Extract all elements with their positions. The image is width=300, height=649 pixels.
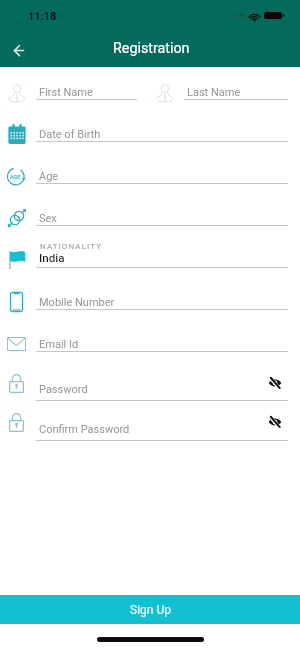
staticText: Confirm Password [39, 423, 130, 436]
staticText: Last Name [187, 86, 241, 99]
button[interactable]: Back [7, 38, 31, 62]
staticText: Sign Up [130, 603, 171, 617]
staticText: Age [39, 170, 59, 183]
staticText: India [39, 251, 65, 265]
staticText: 11:18 [28, 10, 57, 23]
staticText: Mobile Number [39, 296, 115, 309]
staticText: Sex [39, 212, 57, 225]
button[interactable]: Toggle password visibility [268, 416, 282, 428]
staticText: First Name [39, 86, 93, 99]
staticText: AGE [10, 174, 21, 180]
button[interactable]: Sign Up [0, 595, 300, 624]
staticText: Date of Birth [39, 128, 101, 141]
staticText: Email Id [39, 338, 79, 351]
button[interactable]: Toggle password visibility [268, 377, 282, 389]
staticText: Password [39, 383, 88, 396]
staticText: NATIONALITY [40, 242, 103, 251]
staticText: Registration [113, 40, 190, 57]
